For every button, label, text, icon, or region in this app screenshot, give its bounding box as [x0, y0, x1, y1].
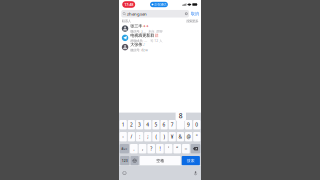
staticText: “: [176, 145, 178, 152]
staticText: (: [155, 133, 156, 140]
button[interactable]: /: [128, 132, 135, 141]
staticText: 微信号: zhangsan: [130, 29, 147, 34]
button[interactable]: 2: [128, 120, 135, 129]
staticText: 3: [138, 121, 141, 128]
staticText: 123: [122, 158, 128, 163]
button[interactable]: @: [185, 132, 192, 141]
button[interactable]: !: [156, 144, 164, 153]
staticText: 6: [163, 121, 166, 128]
button[interactable]: 5: [152, 120, 159, 129]
staticText: #+=: [121, 146, 127, 151]
button[interactable]: &: [177, 132, 184, 141]
button[interactable]: 4: [144, 120, 151, 129]
button[interactable]: ': [165, 144, 172, 153]
button[interactable]: ,: [139, 144, 146, 153]
staticText: 8: [179, 111, 183, 120]
staticText: 0: [195, 121, 198, 128]
button[interactable]: 7: [169, 120, 176, 129]
button[interactable]: -: [120, 132, 127, 141]
button[interactable]: 空格: [140, 156, 181, 165]
staticText: 电视墙更新群: [130, 33, 154, 38]
staticText: 9: [187, 121, 190, 128]
button[interactable]: ": [193, 132, 200, 141]
staticText: 大张伟: [130, 42, 142, 47]
button[interactable]: 6: [160, 120, 168, 129]
staticText: ¥: [171, 133, 174, 140]
button[interactable]: #+=: [120, 144, 129, 153]
staticText: ?: [150, 145, 152, 152]
staticText: 群聊成员: 张三丰: [130, 38, 149, 43]
staticText: .: [133, 145, 134, 152]
button[interactable]: ;: [144, 132, 151, 141]
button[interactable]: 搜索: [182, 156, 200, 165]
button[interactable]: 9: [185, 120, 192, 129]
button[interactable]: 清除: [184, 12, 188, 16]
staticText: 空格: [156, 158, 164, 163]
staticText: !: [159, 145, 160, 152]
staticText: 正在通话: [154, 2, 166, 7]
button[interactable]: :: [136, 132, 143, 141]
staticText: 4: [146, 121, 149, 128]
staticText: 1: [122, 121, 125, 128]
staticText: @: [187, 133, 191, 140]
button[interactable]: ?: [147, 144, 155, 153]
button[interactable]: (: [152, 132, 159, 141]
staticText: 张三丰: [130, 23, 142, 29]
staticText: 联系人: [122, 19, 131, 23]
button[interactable]: ¥: [169, 132, 176, 141]
staticText: ♪: [143, 42, 145, 47]
staticText: 5: [154, 121, 157, 128]
button[interactable]: 语音输入: [192, 170, 199, 176]
staticText: -: [122, 133, 124, 140]
button[interactable]: .: [130, 144, 138, 153]
staticText: ): [164, 133, 165, 140]
staticText: ': [168, 145, 169, 152]
button[interactable]: 张三丰: [119, 24, 201, 33]
staticText: ": [196, 133, 198, 140]
staticText: /: [130, 133, 132, 140]
staticText: 搜索更多: [186, 19, 198, 23]
staticText: 17:48: [124, 2, 133, 7]
button[interactable]: 大张伟: [119, 42, 201, 52]
staticText: ~: [184, 145, 187, 152]
staticText: zhangsan: [127, 11, 147, 17]
button[interactable]: ): [160, 132, 168, 141]
staticText: 2: [130, 121, 133, 128]
staticText: :: [139, 133, 140, 140]
staticText: 7: [171, 121, 174, 128]
button[interactable]: ~: [182, 144, 190, 153]
button[interactable]: 123: [120, 156, 129, 165]
button[interactable]: 0: [193, 120, 200, 129]
button[interactable]: 删除: [191, 144, 200, 153]
staticText: 等 12 人: [150, 38, 162, 43]
button[interactable]: 表情: [121, 170, 128, 176]
staticText: 搜索: [187, 158, 195, 163]
staticText: 微信号: dzw: [130, 48, 148, 52]
staticText: ,: [142, 145, 143, 152]
staticText: ✦✦: [143, 24, 149, 28]
button[interactable]: 3: [136, 120, 143, 129]
button[interactable]: 搜索更多: [186, 19, 198, 23]
staticText: ;: [147, 133, 148, 140]
button[interactable]: “: [173, 144, 181, 153]
button[interactable]: 切换键盘: [130, 156, 139, 165]
button[interactable]: 电视墙更新群: [119, 33, 201, 42]
staticText: 群: [155, 33, 159, 38]
staticText: 取消: [191, 11, 199, 16]
button[interactable]: 取消: [191, 11, 199, 16]
button[interactable]: 1: [120, 120, 127, 129]
staticText: 来自: 群聊: [148, 29, 162, 34]
staticText: &: [178, 133, 182, 140]
